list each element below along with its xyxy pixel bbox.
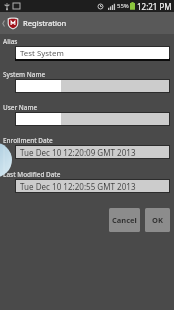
staticText: User Name [3, 103, 38, 112]
staticText: OK [152, 215, 163, 225]
button[interactable]: Tue Dec 10 12:20:55 GMT 2013 [15, 179, 170, 193]
button[interactable]: Cancel [109, 208, 140, 232]
staticText: System Name [3, 70, 46, 79]
staticText: 12:21 PM [137, 1, 172, 12]
staticText: Cancel [112, 215, 137, 225]
button[interactable] [15, 79, 170, 93]
staticText: Registration [23, 18, 67, 28]
staticText: Tue Dec 10 12:20:09 GMT 2013 [20, 147, 136, 158]
button[interactable]: Tue Dec 10 12:20:09 GMT 2013 [15, 145, 170, 159]
button[interactable]: OK [145, 208, 170, 232]
staticText: Enrollment Date [3, 136, 53, 145]
staticText: Tue Dec 10 12:20:55 GMT 2013 [20, 181, 136, 192]
button[interactable]: Test System [15, 46, 170, 61]
staticText: Test System [20, 48, 64, 59]
staticText: 55% [117, 2, 129, 10]
button[interactable] [15, 112, 170, 126]
staticText: Last Modified Date [3, 170, 61, 179]
button[interactable]: Navigate up [0, 12, 19, 34]
staticText: Alias [3, 37, 18, 46]
